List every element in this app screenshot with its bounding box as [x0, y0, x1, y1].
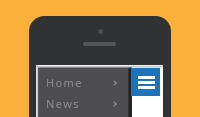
staticText: News: [46, 96, 80, 111]
button[interactable]: News: [38, 93, 128, 114]
button[interactable]: Home: [38, 72, 128, 93]
button[interactable]: Open navigation menu: [131, 68, 160, 96]
staticText: Home: [46, 75, 83, 90]
